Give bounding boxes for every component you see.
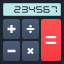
button[interactable]: Minus	[3, 41, 20, 61]
button[interactable]: Divide	[22, 19, 39, 39]
button[interactable]	[4, 4, 60, 15]
button[interactable]: Multiply	[22, 41, 39, 61]
button[interactable]: Plus	[3, 19, 20, 39]
button[interactable]: Equals	[41, 19, 61, 61]
